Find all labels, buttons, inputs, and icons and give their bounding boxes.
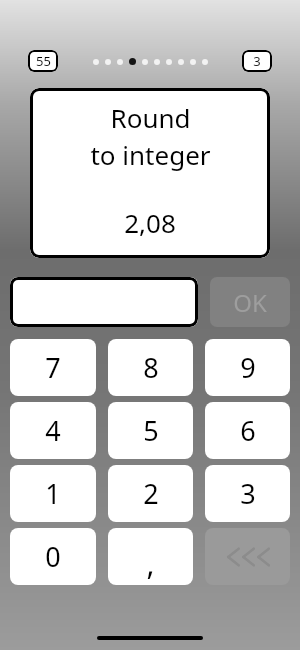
staticText: 5 — [143, 412, 159, 449]
button[interactable]: 5 — [108, 402, 193, 459]
button[interactable]: Round — [30, 88, 270, 258]
button[interactable]: 55 — [28, 50, 58, 72]
button[interactable]: , — [108, 528, 193, 585]
button[interactable]: 6 — [205, 402, 290, 459]
button[interactable]: 9 — [205, 339, 290, 396]
button[interactable]: 3 — [205, 465, 290, 522]
staticText: to integer — [90, 137, 211, 172]
button[interactable]: 2 — [108, 465, 193, 522]
staticText: 7 — [45, 349, 61, 386]
staticText: 9 — [240, 349, 256, 386]
button[interactable]: 8 — [108, 339, 193, 396]
staticText: 4 — [45, 412, 61, 449]
staticText: 55 — [36, 52, 51, 70]
staticText: OK — [233, 286, 267, 319]
button[interactable]: 7 — [10, 339, 96, 396]
staticText: 3 — [240, 475, 256, 512]
button[interactable]: 1 — [10, 465, 96, 522]
staticText: 2,08 — [124, 205, 176, 240]
staticText: 6 — [240, 412, 256, 449]
button[interactable]: OK — [210, 277, 290, 327]
button[interactable]: Backspace — [205, 528, 290, 585]
staticText: 1 — [45, 475, 61, 512]
staticText: Round — [110, 100, 191, 135]
staticText: 0 — [45, 538, 61, 575]
staticText: 3 — [253, 52, 261, 70]
button[interactable]: 3 — [242, 50, 272, 72]
staticText: 2 — [143, 475, 159, 512]
staticText: , — [146, 543, 155, 584]
button[interactable]: 0 — [10, 528, 96, 585]
button[interactable]: 4 — [10, 402, 96, 459]
staticText: 8 — [143, 349, 159, 386]
button[interactable]: Answer input — [10, 277, 198, 327]
